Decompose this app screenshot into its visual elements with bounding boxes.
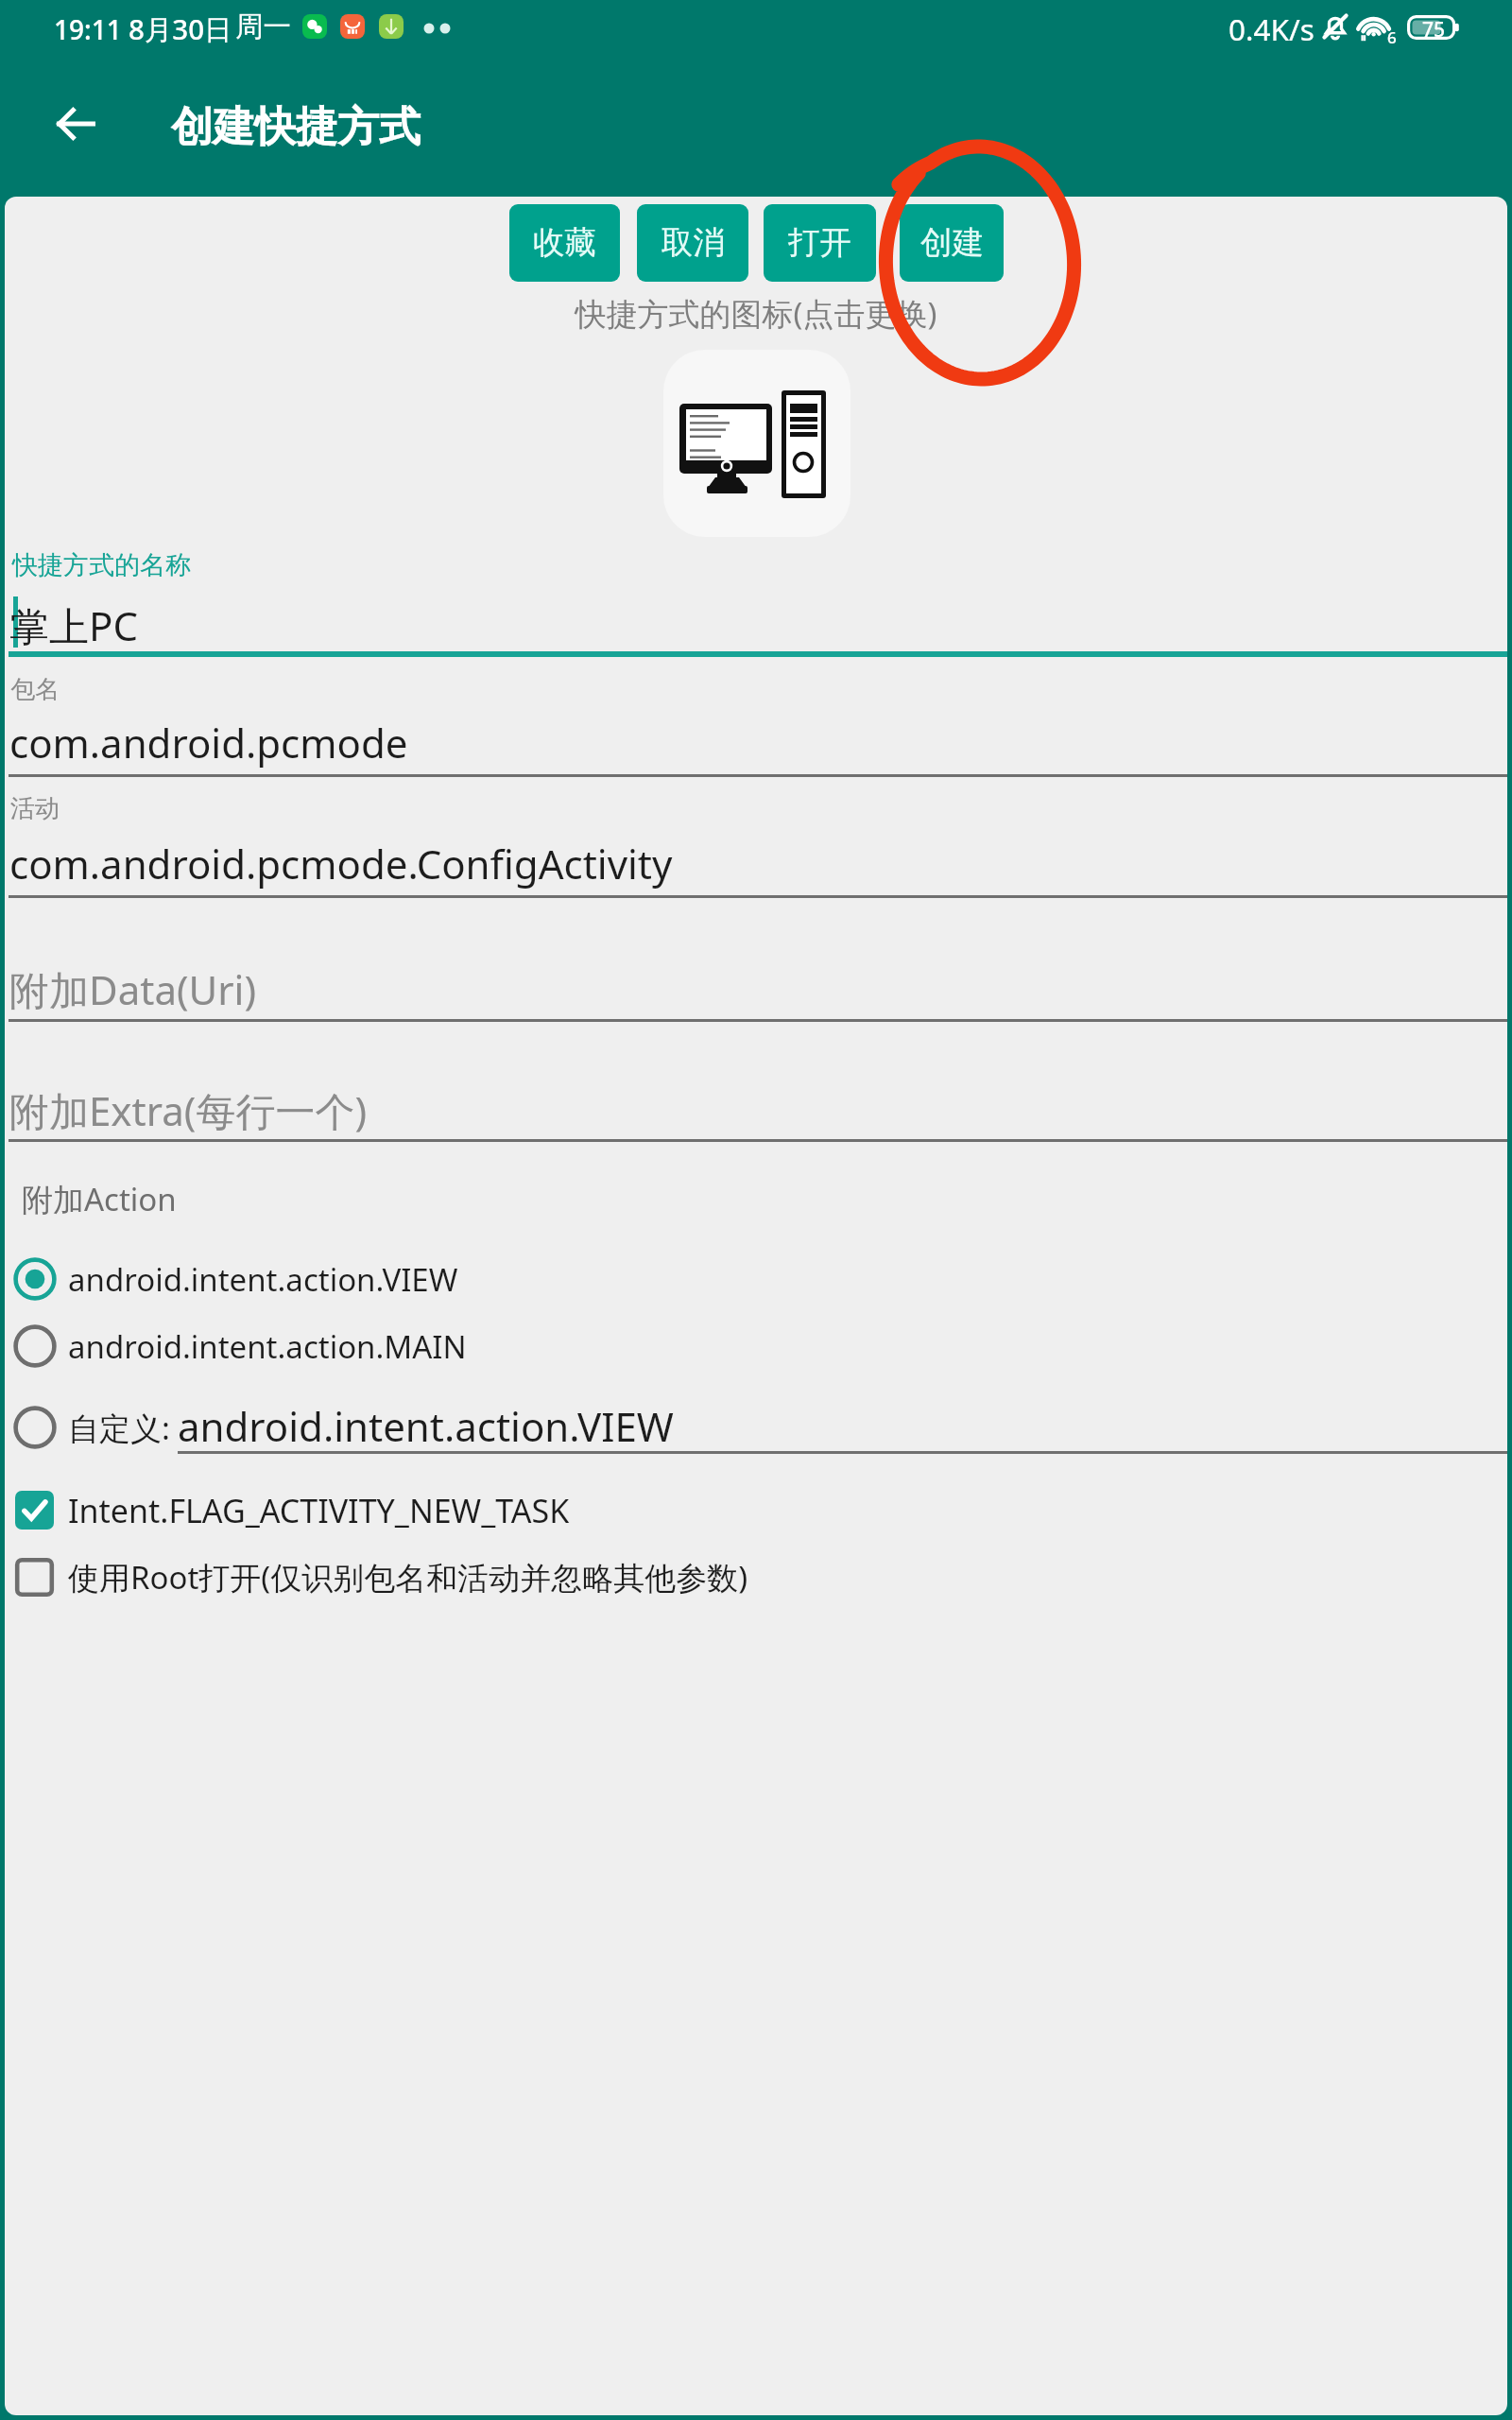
button[interactable]: 使用Root打开(仅识别包名和活动并忽略其他参数) [5, 1544, 1507, 1610]
staticText: 活动 [10, 793, 60, 824]
staticText: 8月30日 [129, 9, 232, 47]
staticText: 周一 [235, 9, 291, 44]
button[interactable]: Back [45, 94, 106, 154]
staticText: 6 [1387, 26, 1397, 48]
staticText: 快捷方式的图标(点击更换) [5, 292, 1507, 335]
staticText: 包名 [10, 674, 60, 705]
staticText: 打开 [788, 223, 851, 263]
staticText: 19:11 [54, 11, 122, 47]
staticText: android.intent.action.VIEW [178, 1399, 674, 1453]
staticText: 75 [1422, 16, 1446, 43]
button[interactable]: android.intent.action.VIEW [5, 1246, 1507, 1312]
button[interactable]: Intent.FLAG_ACTIVITY_NEW_TASK [5, 1477, 1507, 1543]
button[interactable]: 收藏 [509, 204, 620, 282]
staticText: Intent.FLAG_ACTIVITY_NEW_TASK [68, 1489, 570, 1532]
staticText: 自定义: [68, 1407, 170, 1449]
button[interactable]: 创建 [900, 204, 1004, 282]
button[interactable]: 取消 [637, 204, 748, 282]
staticText: android.intent.action.MAIN [68, 1325, 467, 1368]
staticText: 附加Action [22, 1178, 177, 1220]
button[interactable]: 打开 [764, 204, 876, 282]
button[interactable]: 附加Extra [5, 1036, 1507, 1145]
staticText: 0.4K/s [1228, 9, 1314, 49]
button[interactable]: android.intent.action.MAIN [5, 1313, 1507, 1379]
staticText: com.android.pcmode [9, 716, 408, 769]
staticText: 创建 [920, 223, 984, 263]
staticText: 掌上PC [9, 598, 138, 652]
staticText: 附加Extra(每行一个) [9, 1083, 368, 1137]
staticText: 取消 [661, 223, 725, 263]
button[interactable]: 快捷方式的名称 [5, 546, 1507, 660]
button[interactable]: Shortcut icon [663, 350, 850, 537]
button[interactable]: 自定义: [5, 1394, 1507, 1466]
staticText: com.android.pcmode.ConfigActivity [9, 837, 673, 890]
staticText: 创建快捷方式 [171, 101, 421, 153]
button[interactable]: 活动 [5, 788, 1507, 899]
staticText: android.intent.action.VIEW [68, 1258, 458, 1301]
staticText: 使用Root打开(仅识别包名和活动并忽略其他参数) [68, 1556, 748, 1599]
staticText: 快捷方式的名称 [12, 549, 191, 581]
staticText: 附加Data(Uri) [9, 962, 257, 1016]
staticText: 收藏 [533, 223, 596, 263]
button[interactable]: 附加Data(Uri) [5, 915, 1507, 1024]
button[interactable]: 包名 [5, 669, 1507, 780]
